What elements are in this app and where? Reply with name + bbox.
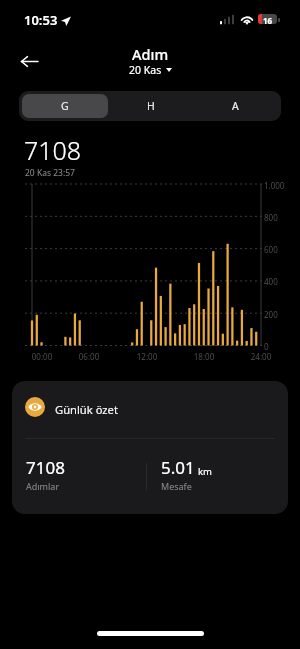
staticText: 800 — [264, 212, 278, 223]
staticText: A — [232, 99, 239, 113]
staticText: 10:53 — [24, 11, 58, 29]
staticText: H — [147, 99, 155, 113]
staticText: 20 Kas — [129, 63, 162, 77]
button[interactable]: 20 Kas — [129, 63, 172, 77]
staticText: 5.01 — [161, 456, 195, 479]
staticText: 400 — [264, 276, 278, 287]
staticText: 00:00 — [30, 351, 54, 362]
staticText: 0 — [264, 341, 269, 352]
button[interactable]: G — [22, 94, 108, 118]
staticText: Adımlar — [26, 480, 60, 492]
button[interactable]: A — [193, 94, 278, 118]
staticText: 06:00 — [77, 351, 101, 362]
staticText: Adım — [132, 44, 169, 64]
staticText: 12:00 — [135, 351, 159, 362]
staticText: 600 — [264, 244, 278, 255]
staticText: Günlük özet — [55, 402, 118, 417]
staticText: G — [61, 99, 69, 113]
staticText: 16 — [258, 15, 277, 24]
staticText: 24:00 — [249, 351, 273, 362]
staticText: 7108 — [24, 133, 82, 167]
staticText: 7108 — [26, 456, 65, 479]
staticText: km — [198, 465, 212, 478]
staticText: Mesafe — [161, 480, 192, 492]
staticText: 20 Kas 23:57 — [25, 167, 75, 179]
button[interactable]: H — [108, 94, 193, 118]
staticText: 200 — [264, 309, 278, 320]
staticText: 18:00 — [192, 351, 216, 362]
staticText: 1.000 — [264, 180, 285, 191]
button[interactable]: Back — [13, 45, 45, 77]
